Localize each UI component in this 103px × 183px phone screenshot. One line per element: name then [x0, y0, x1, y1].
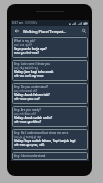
- staticText: Malay: Awak sudah sedia?: [14, 116, 53, 120]
- staticText: 8:37 am: [12, 21, 24, 25]
- staticText: મલે: સાયા સુદા ફહામ, તાપિ: [14, 143, 45, 148]
- staticText: Walking Place/Tempat...: [23, 29, 67, 34]
- staticText: Eng: I dont understand: [14, 154, 46, 158]
- button[interactable]: Eng: I dont understand: [12, 152, 88, 160]
- staticText: ઇંગ્: હા હું સમજું છું પણ: [14, 135, 42, 139]
- staticText: Malay: Jam bagi tahu awak: [14, 70, 54, 74]
- staticText: Eng: Ha I understand but show me once: [14, 131, 69, 135]
- staticText: ઇંગ્: તમે સમજો છો?: [14, 89, 38, 93]
- staticText: Eng: Do you understand?: [14, 85, 49, 89]
- button[interactable]: Eng: Late come I show you: [12, 60, 88, 81]
- staticText: મલે: અવાક ફહામ તાક?: [14, 97, 40, 102]
- staticText: સાયા પુન્ડા કેર્જા આપા?: [14, 51, 39, 56]
- button[interactable]: Search: [79, 26, 89, 36]
- button[interactable]: Back: [11, 26, 23, 36]
- staticText: ઇંગ્: મોડું આવો દેખાડું: [14, 66, 38, 70]
- button[interactable]: Eng: Are you ready?: [12, 106, 88, 127]
- staticText: મારું કામ શું છે?: [14, 43, 32, 47]
- staticText: મલે: જામ બાગી તાહુ અવાક: [14, 74, 44, 79]
- staticText: Saya punda kerja apa?: [14, 47, 47, 51]
- staticText: ઇંગ્: તમે તૈયાર છો?: [14, 112, 36, 116]
- staticText: Malay: Saya sudah faham, Tapi tunjuk lag…: [14, 139, 76, 143]
- staticText: 0.00 KB/s: [25, 21, 38, 25]
- staticText: Eng: Are you ready?: [14, 108, 41, 112]
- staticText: Malay: Awak faham tak?: [14, 93, 50, 97]
- staticText: What is my job?: [14, 39, 36, 43]
- button[interactable]: Eng: Ha I understand but show me once: [12, 129, 88, 150]
- staticText: મલે: અવાક સુદા સેડિયા?: [14, 120, 42, 125]
- button[interactable]: Eng: Do you understand?: [12, 83, 88, 104]
- button[interactable]: What is my job?: [12, 37, 88, 58]
- staticText: Eng: Late come I show you: [14, 62, 51, 66]
